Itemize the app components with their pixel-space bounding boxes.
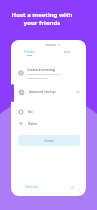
button[interactable]: Create — [18, 135, 80, 146]
staticText: host a meeting and invite your friends t… — [27, 73, 60, 79]
staticText: Maths — [28, 122, 38, 126]
button[interactable]: More — [71, 186, 74, 189]
button[interactable]: Advanced Settings — [11, 87, 86, 97]
staticText: Create a meeting — [27, 67, 55, 72]
staticText: Advanced Settings — [29, 90, 56, 94]
button[interactable]: Maths — [11, 119, 86, 129]
staticText: Create — [44, 139, 54, 143]
button[interactable]: Bio — [11, 107, 86, 117]
staticText: Bio — [28, 110, 33, 114]
staticText: Host a meeting with your friends — [11, 11, 73, 27]
button[interactable]: Join — [48, 49, 86, 57]
staticText: Join — [64, 49, 70, 54]
button[interactable]: Create — [11, 49, 48, 57]
staticText: Create — [24, 49, 35, 54]
button[interactable]: Create a meeting — [11, 66, 86, 80]
button[interactable]: Meetings — [25, 185, 39, 189]
